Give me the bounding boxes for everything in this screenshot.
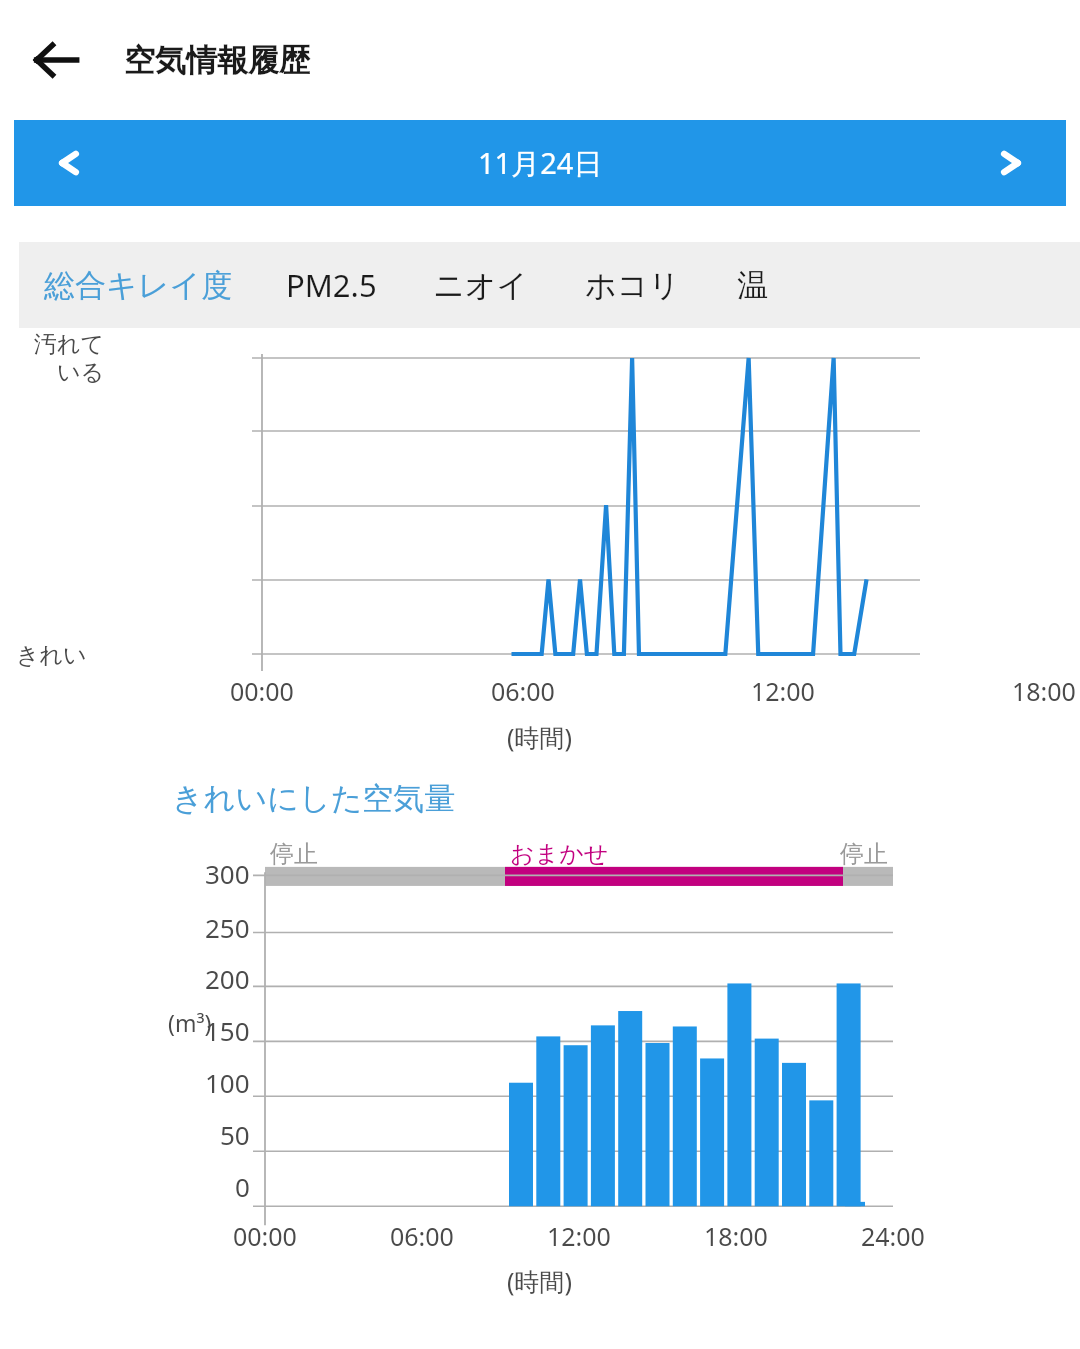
staticText: (時間) [507, 1264, 573, 1298]
staticText: 00:00 [230, 674, 294, 708]
staticText: 11月24日 [478, 143, 603, 183]
button[interactable]: Next day [956, 120, 1066, 206]
button[interactable]: PM2.5 [258, 242, 405, 328]
staticText: 06:00 [491, 674, 555, 708]
button[interactable]: ニオイ [405, 242, 557, 328]
staticText: 汚れて いる [16, 330, 104, 387]
button[interactable]: Previous day [14, 120, 124, 206]
staticText: 150 [205, 1013, 250, 1048]
staticText: きれい [16, 641, 87, 670]
staticText: 12:00 [751, 674, 815, 708]
staticText: 18:00 [704, 1219, 768, 1253]
staticText: 総合キレイ度 [44, 266, 233, 305]
staticText: 18:00 [1012, 674, 1076, 708]
staticText: PM2.5 [286, 264, 377, 306]
staticText: (時間) [507, 720, 573, 754]
staticText: 停止 [270, 839, 318, 869]
staticText: 00:00 [233, 1219, 297, 1253]
staticText: 停止 [840, 839, 888, 869]
staticText: 24:00 [861, 1219, 925, 1253]
staticText: 200 [205, 961, 250, 996]
button[interactable]: 温 [709, 242, 772, 328]
staticText: きれいにした空気量 [172, 779, 456, 818]
staticText: 12:00 [547, 1219, 611, 1253]
button[interactable]: 総合キレイ度 [19, 242, 258, 328]
staticText: (m³) [168, 1007, 212, 1038]
staticText: 100 [205, 1065, 250, 1100]
staticText: 空気情報履歴 [124, 41, 310, 80]
staticText: 250 [205, 910, 250, 945]
staticText: 06:00 [390, 1219, 454, 1253]
staticText: ホコリ [585, 266, 681, 305]
staticText: 0 [235, 1169, 250, 1204]
button[interactable]: Back [18, 22, 94, 98]
staticText: ニオイ [433, 266, 529, 305]
staticText: 50 [220, 1117, 250, 1152]
button[interactable]: ホコリ [557, 242, 709, 328]
staticText: おまかせ [510, 839, 609, 869]
staticText: 温 [737, 266, 768, 305]
staticText: 300 [205, 856, 250, 891]
